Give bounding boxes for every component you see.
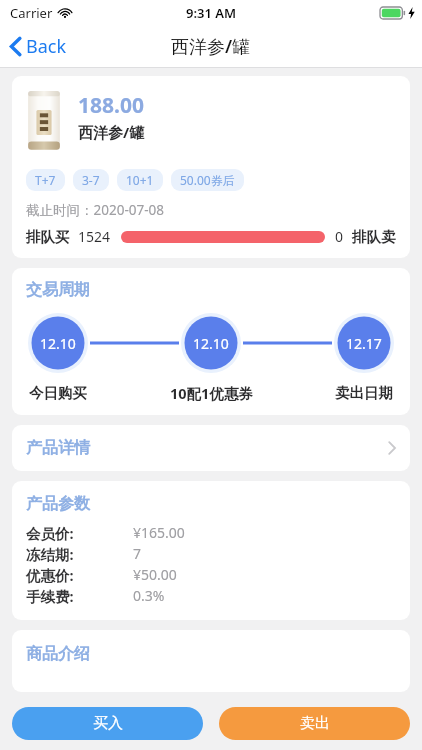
staticText: ¥50.00	[133, 565, 177, 584]
staticText: 手续费:	[26, 586, 74, 606]
staticText: 优惠价:	[26, 565, 74, 585]
staticText: 7	[133, 544, 142, 563]
staticText: 买入	[93, 714, 123, 733]
staticText: 冻结期:	[26, 544, 74, 564]
staticText: 188.00	[78, 91, 144, 120]
staticText: 1524	[78, 227, 111, 246]
staticText: 0	[335, 227, 344, 246]
staticText: Carrier	[10, 4, 53, 22]
button[interactable]: Back	[0, 28, 79, 65]
staticText: 12.17	[346, 334, 382, 353]
staticText: 10配1优惠券	[170, 383, 253, 403]
staticText: 西洋参/罐	[171, 34, 251, 59]
button[interactable]: 3-7	[73, 169, 109, 191]
staticText: 今日购买	[29, 384, 87, 402]
staticText: 西洋参/罐	[78, 122, 145, 142]
staticText: 0.3%	[133, 586, 165, 605]
button[interactable]: 卖出	[219, 707, 410, 740]
button[interactable]: 50.00券后	[171, 169, 244, 191]
staticText: 商品介绍	[26, 644, 90, 664]
staticText: T+7	[35, 172, 56, 188]
staticText: 10+1	[126, 172, 154, 188]
staticText: 卖出日期	[335, 384, 393, 402]
staticText: 产品参数	[26, 494, 90, 514]
staticText: 排队买	[26, 228, 70, 246]
staticText: 交易周期	[26, 280, 90, 300]
staticText: 50.00券后	[180, 172, 235, 188]
staticText: 卖出	[300, 714, 330, 733]
button[interactable]: 10+1	[117, 169, 163, 191]
staticText: 9:31 AM	[186, 4, 237, 22]
button[interactable]: 买入	[12, 707, 203, 740]
staticText: 12.10	[193, 334, 229, 353]
staticText: 排队卖	[352, 228, 396, 246]
button[interactable]: 产品详情	[12, 425, 410, 471]
staticText: 12.10	[40, 334, 76, 353]
staticText: 截止时间：2020-07-08	[26, 201, 164, 219]
staticText: 3-7	[82, 172, 100, 188]
staticText: 产品详情	[26, 438, 90, 458]
staticText: 会员价:	[26, 523, 74, 543]
staticText: ¥165.00	[133, 523, 185, 542]
button[interactable]: T+7	[26, 169, 65, 191]
other: 产品详情	[388, 441, 396, 455]
staticText: Back	[26, 34, 67, 59]
